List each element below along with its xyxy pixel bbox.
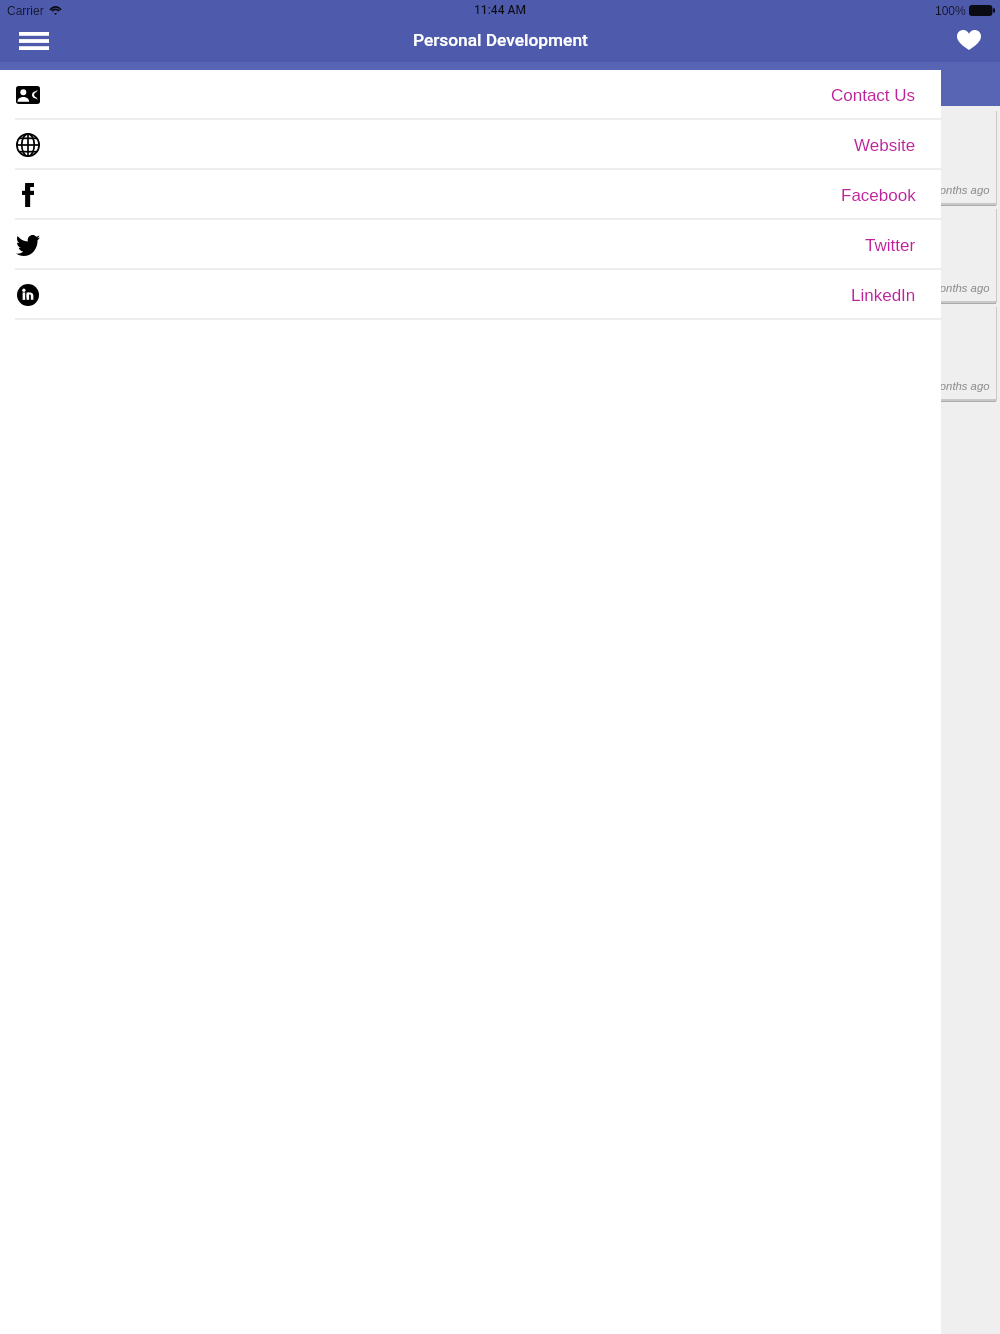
button[interactable]: Website [0, 120, 941, 170]
staticText: 3 months ago [921, 282, 990, 295]
button[interactable]: LinkedIn [0, 270, 941, 320]
button[interactable]: Open navigation menu [4, 18, 64, 64]
staticText: 3 months ago [921, 380, 990, 393]
staticText: 11:44 AM [474, 3, 526, 17]
staticText: Carrier [7, 4, 44, 17]
staticText: 100% [935, 4, 966, 17]
button[interactable]: Facebook [0, 170, 941, 220]
staticText: LinkedIn [851, 286, 916, 305]
button[interactable]: 3 months ago [5, 209, 996, 301]
button[interactable]: 3 months ago [5, 111, 996, 203]
button[interactable]: Twitter [0, 220, 941, 270]
button[interactable]: Contact Us [0, 70, 941, 120]
button[interactable]: Favorite [941, 16, 997, 64]
staticText: Personal Development [413, 30, 588, 50]
button[interactable]: 3 months ago [5, 307, 996, 399]
staticText: Twitter [865, 236, 916, 255]
staticText: Website [854, 136, 916, 155]
staticText: 3 months ago [921, 184, 990, 197]
staticText: Facebook [841, 186, 916, 205]
staticText: Contact Us [831, 86, 916, 105]
